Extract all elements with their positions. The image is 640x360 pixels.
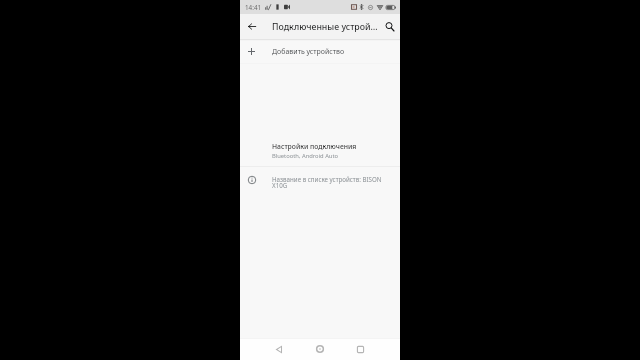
button[interactable]: Название в списке устройств: BISON X10G xyxy=(240,167,400,196)
button[interactable]: Back xyxy=(269,339,289,359)
button[interactable]: Добавить устройство xyxy=(240,41,400,63)
button[interactable]: Recents xyxy=(350,339,370,359)
staticText: 14:41 xyxy=(245,3,262,12)
button[interactable]: Home xyxy=(310,339,330,359)
staticText: Bluetooth, Android Auto xyxy=(272,152,339,160)
button[interactable]: Back xyxy=(240,14,263,39)
button[interactable]: Search xyxy=(379,14,400,39)
staticText: Название в списке устройств: BISON X10G xyxy=(272,175,388,190)
staticText: Добавить устройство xyxy=(272,47,345,57)
staticText: Настройки подключения xyxy=(272,142,357,151)
button[interactable]: Настройки подключения xyxy=(240,142,400,160)
staticText: Подключенные устрой… xyxy=(272,21,378,33)
